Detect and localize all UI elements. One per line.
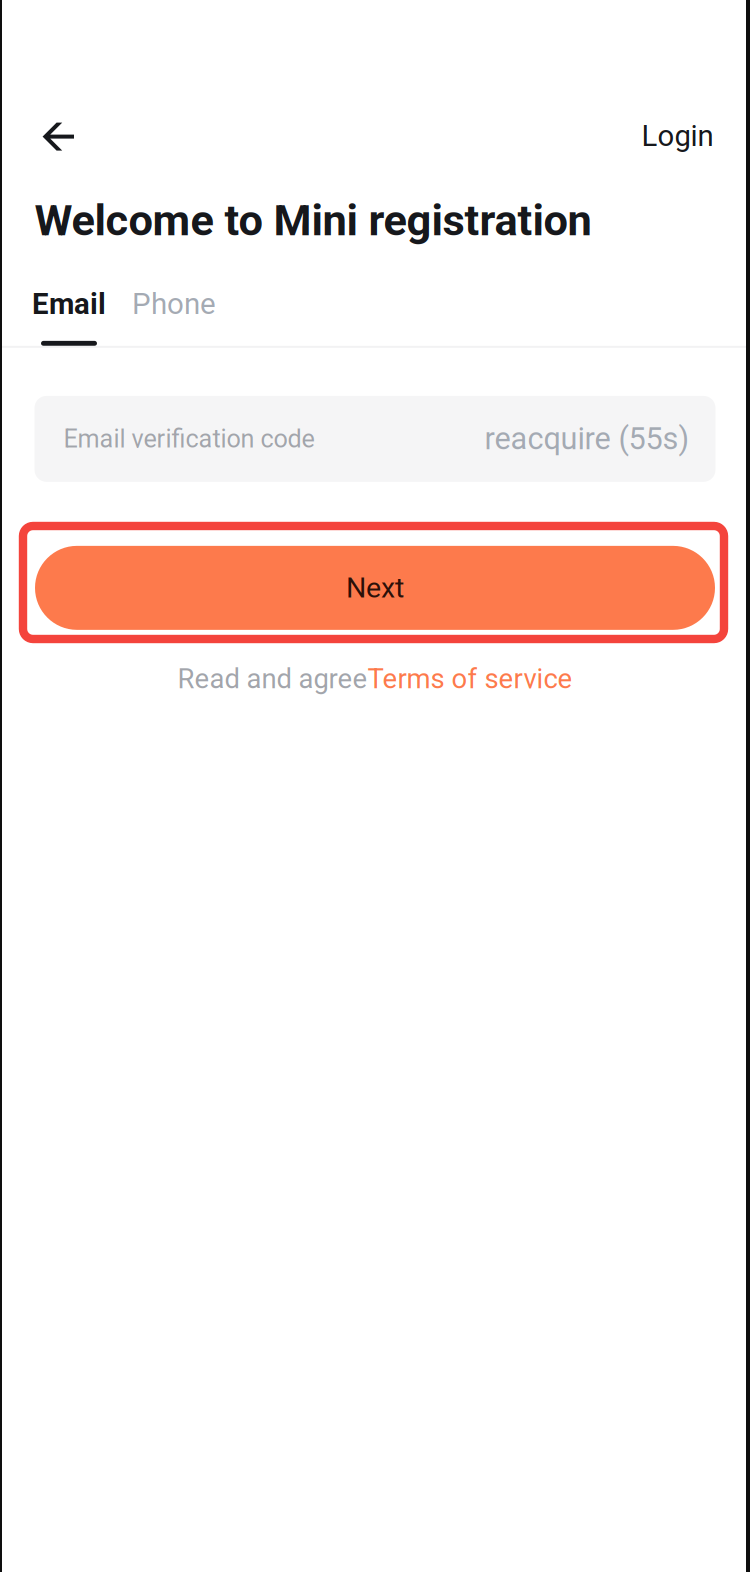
staticText: Email verification code xyxy=(63,424,314,454)
button[interactable]: Back xyxy=(43,101,107,171)
staticText: Read and agree xyxy=(177,663,367,695)
staticText: reacquire (55s) xyxy=(484,421,689,457)
staticText: Next xyxy=(346,571,404,604)
button[interactable]: Next xyxy=(35,546,715,630)
button[interactable]: Email xyxy=(16,282,122,346)
button[interactable]: Login xyxy=(603,101,713,171)
button[interactable]: Phone xyxy=(122,282,226,346)
staticText: Phone xyxy=(132,287,216,321)
staticText: Terms of service xyxy=(367,663,572,695)
button[interactable]: Terms of service xyxy=(367,663,572,695)
staticText: Welcome to Mini registration xyxy=(34,195,591,246)
staticText: Login xyxy=(641,119,713,153)
staticText: Email xyxy=(32,287,106,321)
button[interactable]: reacquire (55s) xyxy=(484,396,715,482)
